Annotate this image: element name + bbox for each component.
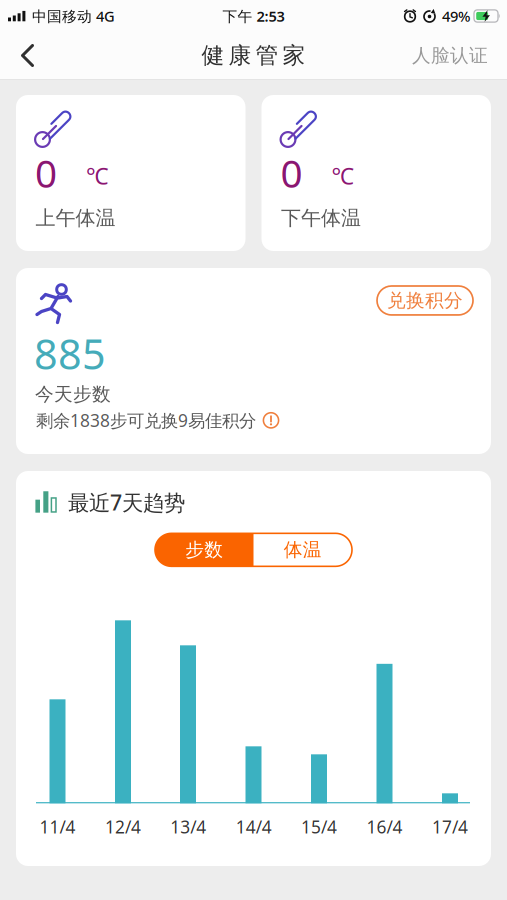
staticText: 中国移动 4G [32, 6, 115, 26]
staticText: 16/4 [366, 815, 402, 838]
staticText: 49% [442, 6, 470, 26]
staticText: 健康管家 [201, 42, 305, 69]
staticText: 上午体温 [35, 206, 115, 230]
button[interactable]: 步数 [155, 533, 253, 566]
button[interactable]: 体温 [253, 533, 352, 566]
staticText: 17/4 [432, 815, 468, 838]
staticText: 0 [280, 147, 302, 198]
staticText: 最近7天趋势 [68, 488, 185, 516]
button[interactable]: 返回 [0, 32, 34, 79]
staticText: 剩余1838步可兑换9易佳积分 [36, 409, 256, 432]
staticText: 14/4 [236, 815, 272, 838]
staticText: 人脸认证 [412, 44, 488, 67]
staticText: 下午体温 [281, 206, 361, 230]
staticText: 885 [34, 326, 106, 381]
staticText: 12/4 [105, 815, 141, 838]
staticText: 下午 2:53 [222, 6, 284, 26]
staticText: ℃ [331, 161, 354, 191]
staticText: 13/4 [170, 815, 206, 838]
button[interactable]: 人脸认证 [412, 32, 507, 79]
staticText: ℃ [86, 161, 109, 191]
staticText: 15/4 [301, 815, 337, 838]
staticText: 11/4 [39, 815, 75, 838]
button[interactable]: 积分说明 [262, 411, 280, 429]
button[interactable]: 兑换积分 [377, 268, 491, 315]
staticText: 0 [35, 147, 57, 198]
staticText: 兑换积分 [387, 289, 463, 312]
staticText: 步数 [185, 538, 223, 561]
staticText: 今天步数 [35, 383, 111, 406]
staticText: 体温 [284, 538, 322, 561]
